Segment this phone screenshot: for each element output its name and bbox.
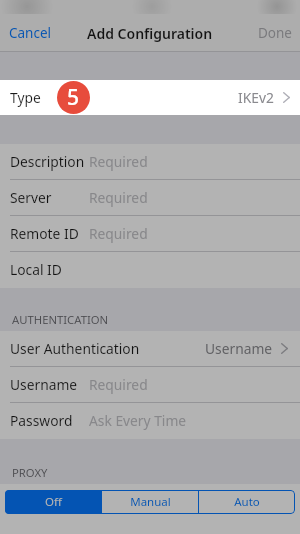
staticText: 5	[67, 83, 80, 112]
staticText: Auto	[234, 494, 260, 510]
staticText: Password	[10, 411, 73, 430]
staticText: Username	[205, 339, 273, 358]
staticText: Required	[89, 375, 148, 394]
staticText: Manual	[130, 494, 171, 510]
staticText: Remote ID	[10, 224, 79, 243]
staticText: Type	[10, 88, 41, 107]
button[interactable]: User Authentication	[0, 331, 300, 367]
staticText: Required	[89, 188, 148, 207]
staticText: Cancel	[9, 24, 52, 42]
button[interactable]: Remote ID	[0, 216, 300, 252]
button[interactable]: Done	[248, 14, 300, 52]
staticText: Off	[45, 494, 62, 510]
button[interactable]: Server	[0, 180, 300, 216]
staticText: User Authentication	[10, 339, 140, 358]
staticText: Add Configuration	[87, 24, 213, 43]
staticText: Done	[258, 24, 292, 42]
staticText: AUTHENTICATION	[12, 312, 109, 327]
staticText: Description	[10, 152, 85, 171]
staticText: PROXY	[12, 465, 48, 480]
button[interactable]: Local ID	[0, 252, 300, 288]
button[interactable]: Manual	[102, 490, 198, 514]
button[interactable]: Password	[0, 403, 300, 439]
button[interactable]: Description	[0, 144, 300, 180]
button[interactable]: Off	[5, 490, 101, 514]
staticText: Server	[10, 188, 52, 207]
staticText: Ask Every Time	[89, 411, 187, 430]
staticText: Username	[10, 375, 78, 394]
staticText: IKEv2	[238, 88, 274, 107]
button[interactable]: Username	[0, 367, 300, 403]
staticText: Required	[89, 152, 148, 171]
button[interactable]: Auto	[199, 490, 295, 514]
staticText: Required	[89, 224, 148, 243]
button[interactable]: Cancel	[0, 14, 62, 52]
staticText: Local ID	[10, 260, 62, 279]
other: Step 5	[57, 81, 90, 114]
button[interactable]: Type	[0, 80, 300, 115]
